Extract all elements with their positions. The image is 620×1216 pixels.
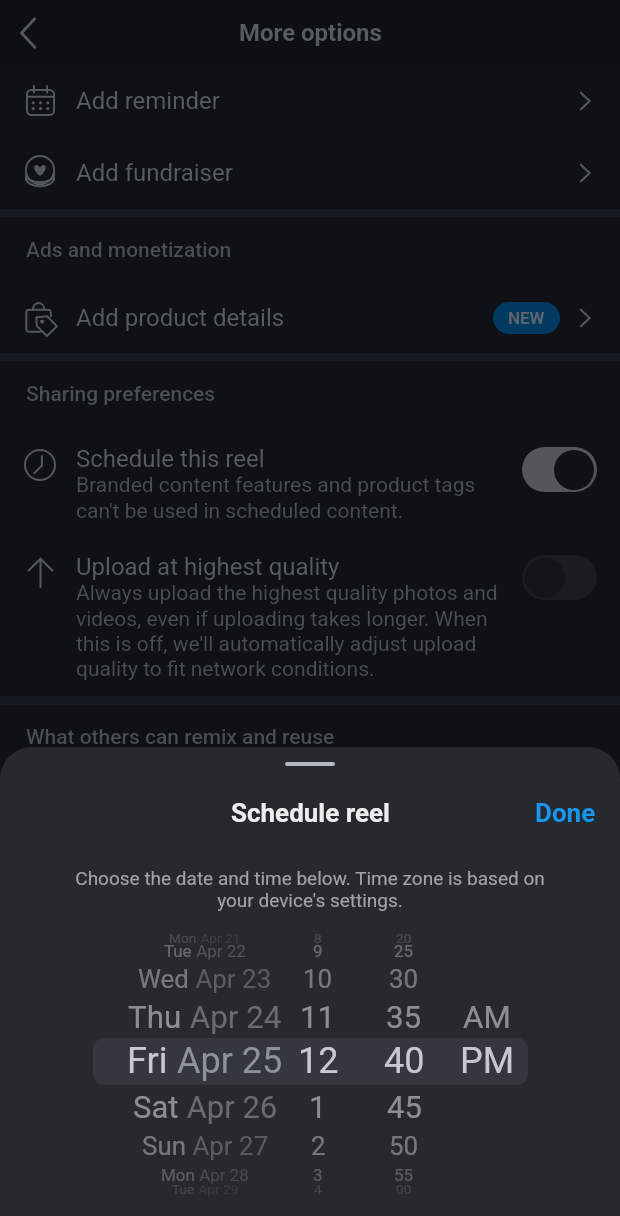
- staticText: Apr 25: [168, 1040, 283, 1082]
- staticText: Apr 24: [182, 999, 282, 1036]
- button[interactable]: Add reminder: [0, 65, 620, 136]
- staticText: Thu: [128, 999, 182, 1036]
- staticText: Apr 29: [195, 1181, 239, 1197]
- staticText: Sun: [142, 1131, 186, 1161]
- staticText: 12: [298, 1040, 339, 1082]
- staticText: Wed: [138, 964, 189, 994]
- staticText: 10: [303, 964, 333, 994]
- button[interactable]: [522, 447, 597, 492]
- staticText: 00: [396, 1181, 412, 1197]
- staticText: Schedule this reel: [76, 445, 265, 473]
- staticText: Sharing preferences: [26, 382, 216, 407]
- staticText: Always upload the highest quality photos…: [76, 581, 508, 681]
- staticText: Schedule reel: [231, 798, 390, 828]
- staticText: 8: [314, 930, 322, 946]
- staticText: Add fundraiser: [76, 159, 233, 187]
- staticText: Apr 28: [195, 1165, 249, 1185]
- staticText: Apr 22: [192, 941, 246, 961]
- staticText: PM: [460, 1040, 515, 1082]
- staticText: Mon: [169, 930, 197, 946]
- staticText: Add reminder: [76, 87, 220, 115]
- staticText: 35: [386, 999, 422, 1036]
- staticText: Mon: [161, 1165, 195, 1185]
- button[interactable]: Upload at highest quality: [0, 523, 620, 681]
- staticText: More options: [239, 19, 382, 47]
- staticText: What others can remix and reuse: [26, 725, 335, 750]
- staticText: 1: [309, 1089, 327, 1125]
- staticText: 30: [389, 964, 419, 994]
- staticText: 40: [384, 1040, 425, 1082]
- staticText: Add product details: [76, 304, 285, 332]
- staticText: 45: [387, 1089, 422, 1125]
- staticText: Choose the date and time below. Time zon…: [72, 867, 548, 912]
- staticText: NEW: [508, 308, 545, 328]
- staticText: Tue: [172, 1181, 195, 1197]
- staticText: 11: [300, 999, 336, 1036]
- staticText: Branded content features and product tag…: [76, 473, 508, 523]
- staticText: Tue: [164, 941, 192, 961]
- staticText: 2: [311, 1131, 326, 1161]
- staticText: 9: [313, 941, 323, 961]
- staticText: Apr 26: [179, 1089, 278, 1125]
- button[interactable]: Done: [535, 798, 596, 828]
- button[interactable]: Add product details: [0, 283, 620, 353]
- staticText: 4: [314, 1181, 322, 1197]
- button[interactable]: Add fundraiser: [0, 136, 620, 209]
- staticText: Apr 23: [189, 964, 272, 994]
- staticText: 25: [394, 941, 414, 961]
- button[interactable]: Schedule this reel: [0, 427, 620, 523]
- staticText: 50: [389, 1131, 419, 1161]
- button[interactable]: [522, 555, 597, 600]
- staticText: Apr 27: [186, 1131, 269, 1161]
- staticText: Done: [535, 798, 596, 828]
- staticText: Sat: [133, 1089, 179, 1125]
- staticText: AM: [463, 999, 511, 1036]
- staticText: 55: [394, 1165, 414, 1185]
- staticText: 20: [396, 930, 412, 946]
- staticText: Ads and monetization: [26, 238, 232, 263]
- staticText: Apr 21: [197, 930, 241, 946]
- staticText: 3: [313, 1165, 323, 1185]
- button[interactable]: Back: [0, 4, 58, 62]
- staticText: Fri: [127, 1040, 168, 1082]
- staticText: Upload at highest quality: [76, 553, 340, 581]
